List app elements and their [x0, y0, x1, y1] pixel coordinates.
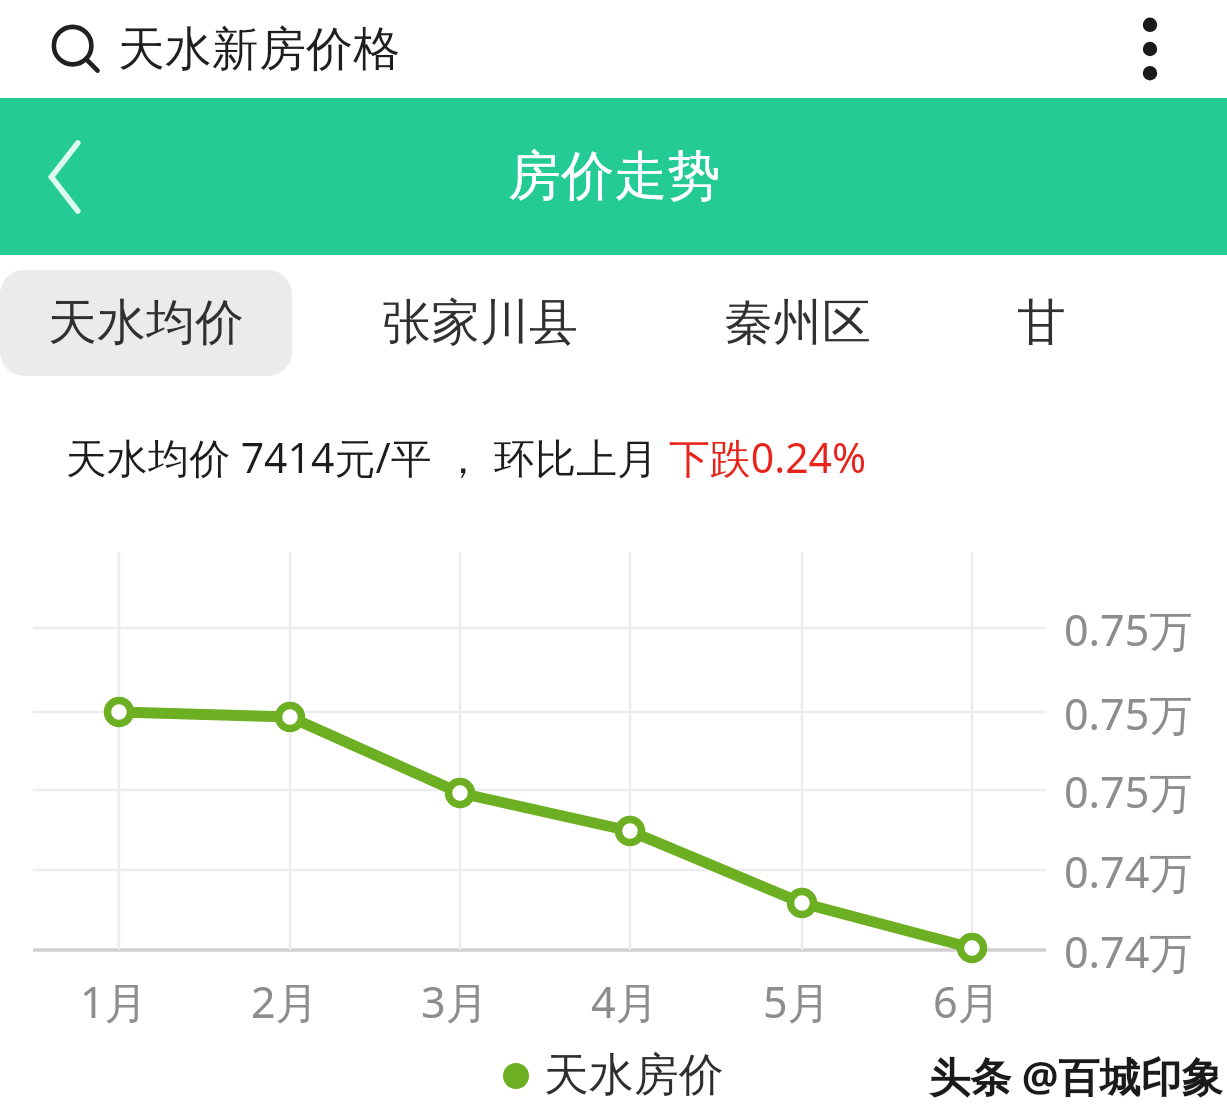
staticText: 5月: [763, 972, 831, 1031]
staticText: 0.74万: [1064, 842, 1193, 901]
button[interactable]: 张家川县: [334, 270, 626, 376]
staticText: 6月: [933, 972, 1001, 1031]
staticText: 0.75万: [1064, 684, 1193, 743]
staticText: 天水均价 7414元/平 ， 环比上月 下跌0.24%: [66, 429, 867, 485]
button[interactable]: Back: [20, 121, 110, 233]
button[interactable]: 天水均价: [0, 270, 292, 376]
staticText: 1月: [80, 972, 148, 1031]
staticText: 0.75万: [1064, 762, 1193, 821]
staticText: 房价走势: [508, 143, 720, 210]
staticText: 0.74万: [1064, 922, 1193, 981]
staticText: 天水均价: [48, 292, 244, 354]
staticText: 2月: [251, 972, 319, 1031]
staticText: 甘: [1017, 292, 1066, 354]
button[interactable]: More options: [1113, 1, 1187, 97]
staticText: 0.75万: [1064, 600, 1193, 659]
button[interactable]: 秦州区: [676, 270, 919, 376]
button[interactable]: 甘: [969, 270, 1114, 376]
staticText: 头条 @百城印象: [929, 1048, 1223, 1104]
button[interactable]: 天水房价: [503, 1047, 724, 1104]
staticText: 天水房价: [544, 1047, 724, 1104]
staticText: 3月: [421, 972, 489, 1031]
staticText: 秦州区: [724, 292, 871, 354]
button[interactable]: 天水新房价格: [48, 0, 400, 98]
staticText: 天水新房价格: [118, 20, 400, 79]
staticText: 4月: [591, 972, 659, 1031]
staticText: 张家川县: [382, 292, 578, 354]
